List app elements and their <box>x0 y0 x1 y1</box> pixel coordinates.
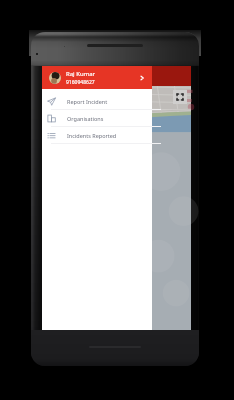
staticText: Incidents Reported <box>67 132 117 139</box>
button[interactable]: Report Incident <box>42 93 152 110</box>
staticText: Organisations <box>67 115 104 122</box>
button[interactable]: Organisations <box>42 110 152 127</box>
staticText: 9160948627 <box>66 79 95 86</box>
button[interactable]: Raj Kumar <box>42 66 152 89</box>
button[interactable]: Fullscreen <box>173 90 187 104</box>
button[interactable] <box>42 66 191 86</box>
staticText: Report Incident <box>67 98 108 105</box>
staticText: Raj Kumar <box>66 70 96 78</box>
button[interactable]: Incidents Reported <box>42 127 152 144</box>
